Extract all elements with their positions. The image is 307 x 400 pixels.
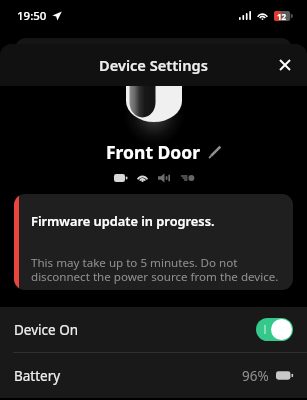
staticText: Device On: [14, 321, 79, 339]
button[interactable]: Battery: [0, 353, 307, 398]
staticText: This may take up to 5 minutes. Do not di…: [31, 255, 279, 284]
staticText: Firmware update in progress.: [31, 212, 215, 229]
button[interactable]: Close: [268, 48, 302, 82]
staticText: Front Door: [106, 140, 201, 164]
staticText: 19:50: [17, 8, 47, 24]
staticText: 96%: [242, 367, 269, 385]
staticText: Battery: [14, 367, 61, 385]
staticText: Device Settings: [99, 55, 208, 75]
staticText: 12: [277, 11, 287, 21]
button[interactable]: Rename device: [204, 141, 226, 163]
button[interactable]: Device On: [0, 307, 307, 352]
